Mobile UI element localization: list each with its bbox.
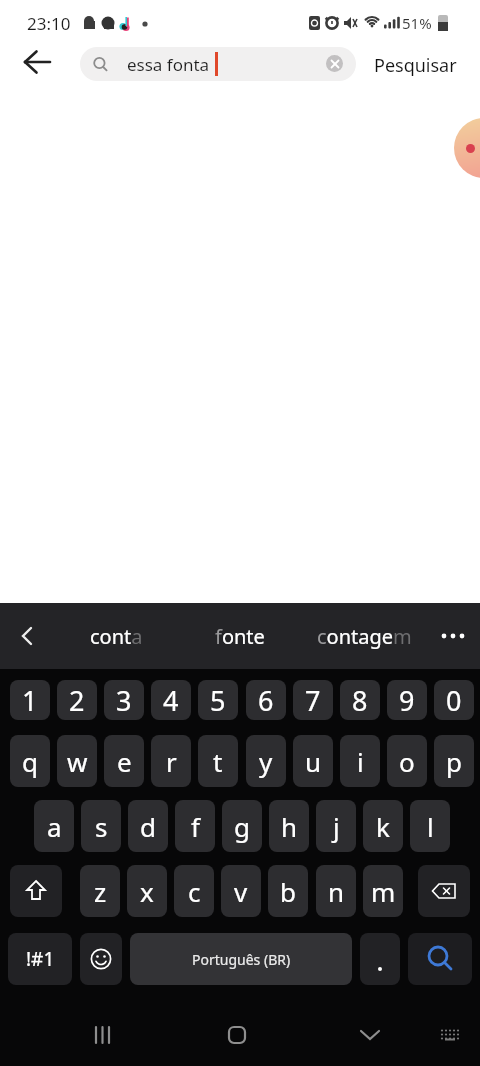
staticText: Português (BR) [192,950,291,969]
staticText: v [234,874,248,909]
button[interactable] [14,40,62,88]
staticText: a [47,809,62,844]
button[interactable] [10,865,62,917]
button[interactable]: v [221,865,261,917]
staticText: 5 [210,682,226,719]
button[interactable]: m [363,865,403,917]
button[interactable] [418,865,470,917]
staticText: 9 [399,682,415,719]
button[interactable]: j [316,800,356,852]
button[interactable]: y [246,735,286,787]
button[interactable]: a [34,800,74,852]
staticText: 0 [446,682,462,719]
button[interactable]: r [151,735,191,787]
button[interactable]: 6 [246,680,286,720]
button[interactable]: p [434,735,474,787]
button[interactable]: w [57,735,97,787]
button[interactable]: o [387,735,427,787]
button[interactable] [326,55,343,72]
button[interactable]: 9 [387,680,427,720]
staticText: n [328,874,345,909]
staticText: !#1 [26,946,55,972]
button[interactable]: t [198,735,238,787]
staticText: p [446,744,462,779]
staticText: i [357,744,364,779]
staticText: d [140,809,156,844]
button[interactable]: contagem [302,603,426,669]
button[interactable]: k [363,800,403,852]
button[interactable]: n [316,865,356,917]
button[interactable] [204,1008,270,1062]
button[interactable] [337,1008,403,1062]
staticText: 8 [352,682,368,719]
button[interactable]: e [104,735,144,787]
button[interactable] [80,933,122,985]
staticText: o [399,744,415,779]
staticText: t [213,744,223,779]
staticText: g [234,809,250,844]
button[interactable]: essa fonta [80,47,356,81]
staticText: h [281,809,298,844]
button[interactable]: 4 [151,680,191,720]
button[interactable]: l [410,800,450,852]
button[interactable]: 2 [57,680,97,720]
staticText: fonte [215,623,265,650]
button[interactable]: g [222,800,262,852]
button[interactable] [360,933,400,985]
staticText: 6 [258,682,274,719]
staticText: 4 [163,682,179,719]
button[interactable]: 1 [10,680,50,720]
staticText: 7 [305,682,321,719]
button[interactable]: x [127,865,167,917]
button[interactable]: f [175,800,215,852]
button[interactable]: z [80,865,120,917]
staticText: r [166,744,177,779]
staticText: 3 [116,682,132,719]
button[interactable]: 3 [104,680,144,720]
staticText: m [371,874,396,909]
staticText: 51% [402,13,432,33]
button[interactable]: Português (BR) [130,933,352,985]
button[interactable] [408,933,472,985]
button[interactable]: q [10,735,50,787]
staticText: s [95,809,108,844]
staticText: w [67,744,88,779]
button[interactable]: 8 [340,680,380,720]
staticText: l [427,809,434,844]
button[interactable] [454,118,480,178]
staticText: b [280,874,296,909]
staticText: 1 [22,682,38,719]
staticText: f [191,809,200,844]
staticText: 2 [69,682,85,719]
button[interactable]: fonte [178,603,302,669]
staticText: 23:10 [27,12,71,35]
button[interactable]: s [81,800,121,852]
staticText: z [94,874,107,909]
staticText: c [188,874,201,909]
button[interactable]: h [269,800,309,852]
staticText: essa fonta [127,53,210,76]
button[interactable]: d [128,800,168,852]
staticText: conta [90,623,143,650]
button[interactable] [70,1008,136,1062]
button[interactable]: i [340,735,380,787]
button[interactable]: 5 [198,680,238,720]
staticText: k [376,809,390,844]
button[interactable]: c [174,865,214,917]
staticText: e [117,744,132,779]
button[interactable]: Pesquisar [366,48,465,82]
staticText: contagem [317,623,412,650]
staticText: j [333,809,340,844]
button[interactable] [0,603,54,669]
staticText: u [305,744,322,779]
button[interactable]: !#1 [8,933,72,985]
button[interactable] [430,1015,470,1055]
button[interactable]: 0 [434,680,474,720]
button[interactable]: conta [54,603,178,669]
button[interactable]: u [293,735,333,787]
staticText: q [22,744,38,779]
button[interactable] [426,603,480,669]
button[interactable]: b [268,865,308,917]
staticText: x [140,874,154,909]
button[interactable]: 7 [293,680,333,720]
